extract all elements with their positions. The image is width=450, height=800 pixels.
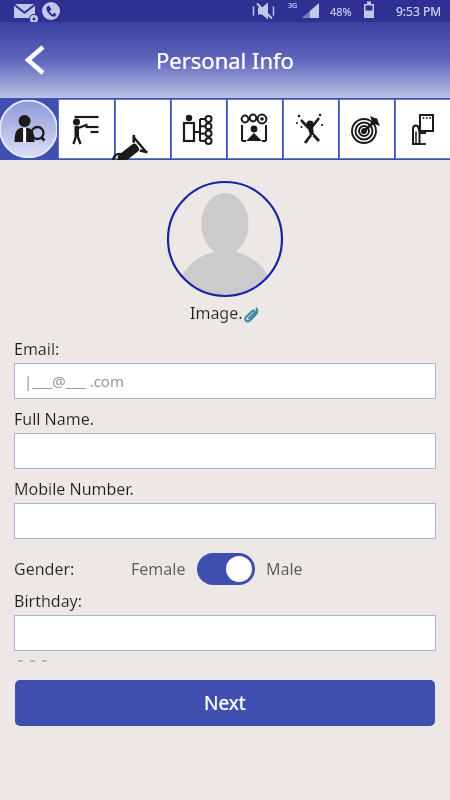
staticText: |___@___ .com [24,371,124,391]
button[interactable] [14,433,436,469]
staticText: 9:53 PM [396,3,442,19]
staticText: Email: [14,338,60,360]
staticText: Gender: [14,558,75,580]
button[interactable]: Profile image [166,180,284,298]
button[interactable] [14,615,436,651]
staticText: Image. [190,302,243,324]
button[interactable]: Skills [170,98,226,160]
staticText: Birthday: [14,590,83,612]
staticText: 48% [330,4,352,19]
staticText: Mobile Number. [14,478,134,500]
button[interactable]: |___@___ .com [14,363,436,399]
button[interactable]: Submit [394,98,450,160]
staticText: Female [131,558,186,580]
button[interactable]: Back [10,35,60,85]
button[interactable]: Experience [226,98,282,160]
staticText: Male [266,558,303,580]
button[interactable]: Graduation [114,98,170,160]
button[interactable]: Personal Info [0,98,57,160]
button[interactable] [14,503,436,539]
staticText: Full Name. [14,408,95,430]
button[interactable]: Goals [338,98,394,160]
button[interactable]: Education [57,98,114,160]
button[interactable]: Image. [0,302,450,324]
button[interactable]: Next [15,680,435,726]
button[interactable]: Activities [282,98,338,160]
staticText: 3G [288,1,298,11]
staticText: Next [204,690,246,716]
staticText: Personal Info [156,45,294,75]
button[interactable]: Gender toggle [197,553,255,585]
